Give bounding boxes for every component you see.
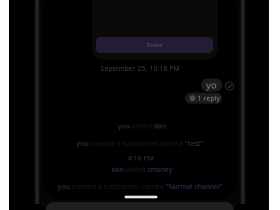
staticText: you	[76, 139, 88, 148]
staticText: created a subchannel named	[90, 139, 182, 148]
staticText: added	[126, 165, 146, 174]
staticText: added	[132, 122, 152, 130]
button[interactable]: 1 reply	[185, 93, 222, 104]
staticText: yo	[206, 79, 217, 91]
staticText: Delete	[146, 41, 162, 49]
staticText: dan	[112, 165, 124, 174]
staticText: “Normal channel”	[166, 182, 223, 191]
staticText: “test”	[184, 139, 203, 148]
staticText: 4:16 PM	[128, 154, 154, 162]
staticText: 1 reply	[197, 94, 219, 103]
staticText: September 25, 10:18 PM	[100, 64, 179, 73]
button[interactable]: Delete	[96, 37, 213, 53]
staticText: you	[58, 182, 70, 191]
staticText: created a subchannel named	[72, 182, 164, 191]
staticText: you	[118, 122, 130, 130]
staticText: cmoney	[148, 165, 173, 174]
staticText: dan	[154, 122, 166, 130]
